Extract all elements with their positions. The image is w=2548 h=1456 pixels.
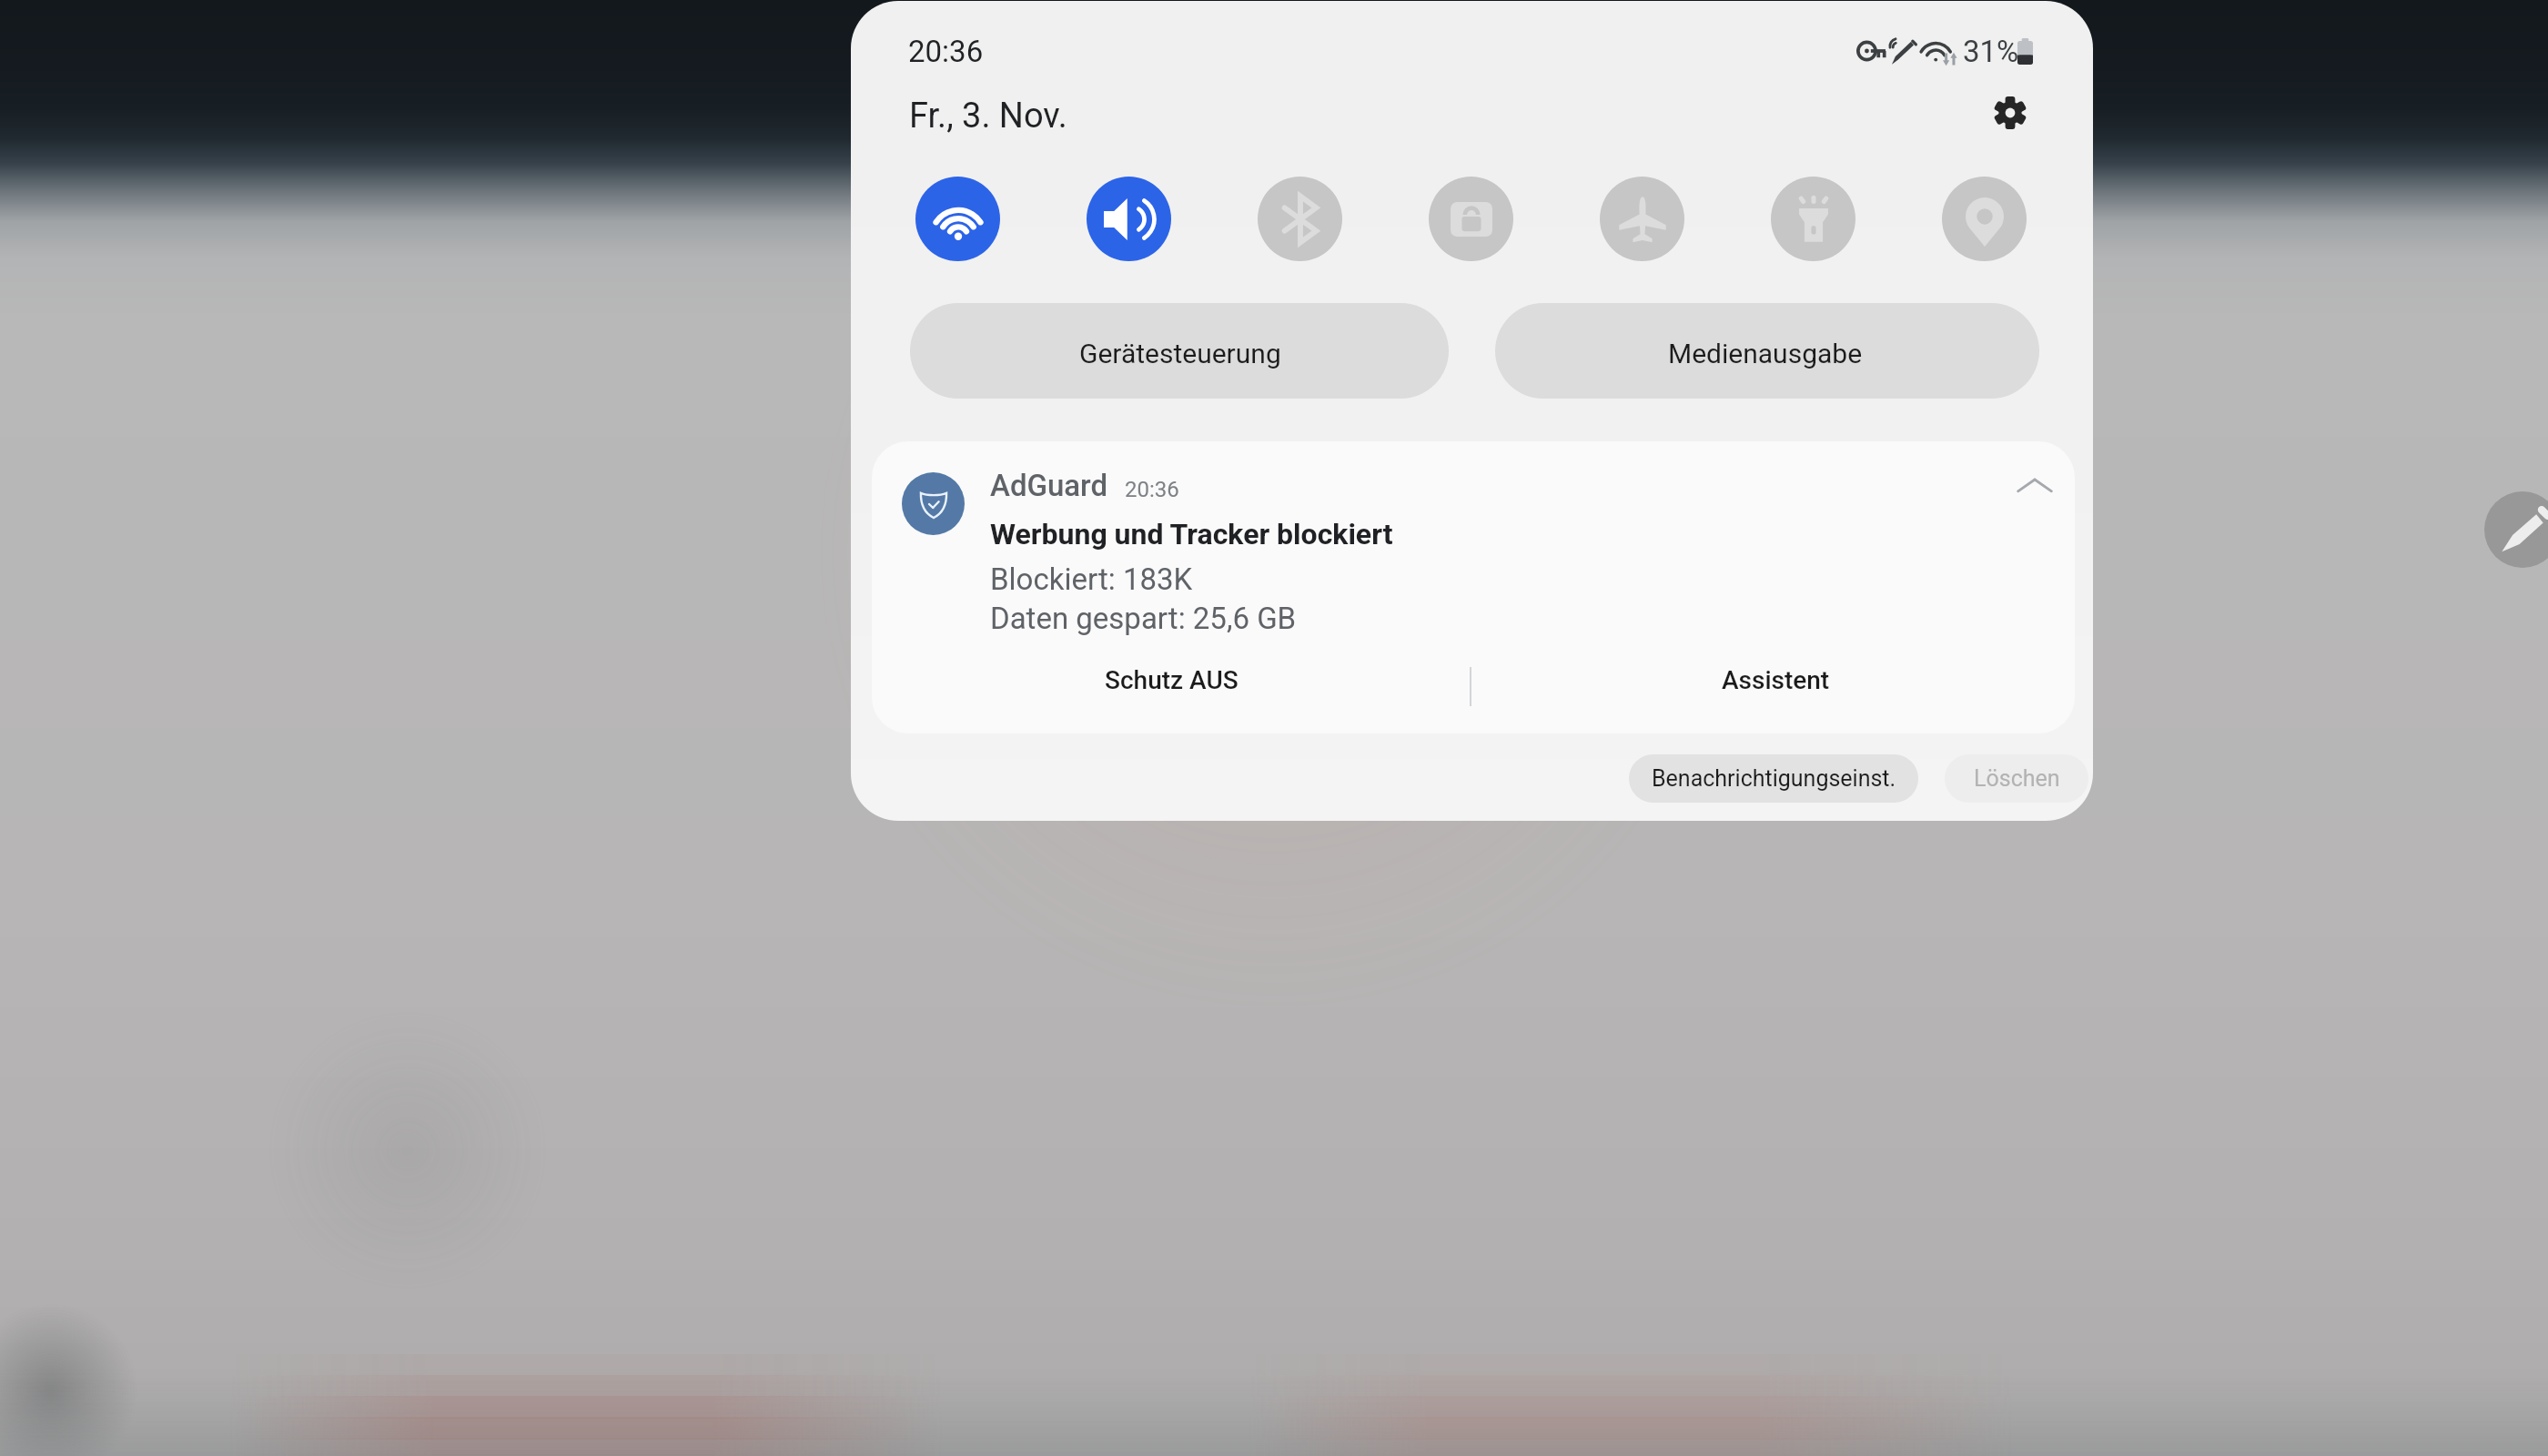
button[interactable]: Gesperrt: [1429, 177, 1513, 261]
staticText: AdGuard: [990, 468, 1108, 503]
button[interactable]: Löschen: [1945, 754, 2088, 803]
button[interactable]: Benachrichtigungseinst.: [1629, 754, 1918, 803]
button[interactable]: Taschenlampe: [1771, 177, 1855, 261]
button[interactable]: Bluetooth: [1258, 177, 1342, 261]
staticText: Schutz AUS: [1105, 665, 1239, 695]
staticText: Blockiert: 183K: [990, 561, 1193, 597]
staticText: Werbung und Tracker blockiert: [990, 517, 1393, 551]
button[interactable]: Assistent: [1520, 651, 2029, 722]
staticText: Benachrichtigungseinst.: [1652, 765, 1896, 792]
button[interactable]: Flugmodus: [1600, 177, 1684, 261]
button[interactable]: WLAN: [915, 177, 1000, 261]
staticText: 31%: [1963, 34, 2019, 69]
button[interactable]: Ton: [1087, 177, 1171, 261]
button[interactable]: Medienausgabe: [1495, 303, 2039, 399]
staticText: Daten gespart: 25,6 GB: [990, 601, 1297, 636]
button[interactable]: Collapse: [872, 441, 2075, 733]
button[interactable]: Gerätesteuerung: [910, 303, 1449, 399]
button[interactable]: Edit: [2484, 491, 2548, 568]
staticText: 20:36: [908, 34, 984, 69]
staticText: Gerätesteuerung: [1079, 338, 1281, 369]
staticText: Assistent: [1722, 665, 1830, 695]
staticText: Fr., 3. Nov.: [909, 96, 1067, 136]
button[interactable]: Collapse: [2007, 460, 2062, 514]
staticText: Medienausgabe: [1668, 338, 1863, 369]
staticText: 20:36: [1125, 477, 1179, 502]
button[interactable]: Schutz AUS: [910, 651, 1420, 722]
button[interactable]: Standort: [1942, 177, 2027, 261]
button[interactable]: Settings: [1974, 76, 2047, 149]
staticText: Löschen: [1974, 765, 2060, 792]
